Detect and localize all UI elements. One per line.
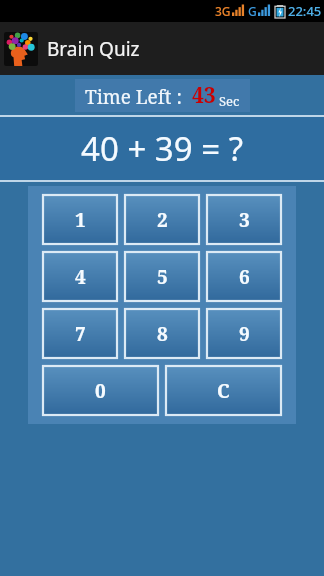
staticText: 6: [239, 264, 250, 290]
staticText: 5: [157, 264, 168, 290]
staticText: Time Left :: [85, 84, 192, 110]
button[interactable]: 0: [43, 366, 158, 415]
staticText: 1: [75, 207, 86, 233]
button[interactable]: 5: [125, 252, 199, 301]
staticText: 0: [95, 378, 106, 404]
staticText: 43: [192, 81, 216, 110]
button[interactable]: 7: [43, 309, 117, 358]
button[interactable]: C: [166, 366, 281, 415]
staticText: 3: [239, 207, 250, 233]
button[interactable]: 4: [43, 252, 117, 301]
button[interactable]: 1: [43, 195, 117, 244]
staticText: 3G: [215, 3, 231, 19]
button[interactable]: 6: [207, 252, 281, 301]
button[interactable]: 2: [125, 195, 199, 244]
staticText: 2: [157, 207, 168, 233]
staticText: G: [248, 3, 257, 19]
staticText: 4: [75, 264, 86, 290]
button[interactable]: 8: [125, 309, 199, 358]
staticText: 7: [75, 321, 86, 347]
staticText: 8: [157, 321, 168, 347]
staticText: Sec: [219, 92, 240, 110]
staticText: Brain Quiz: [47, 36, 140, 62]
staticText: 22:45: [288, 2, 322, 20]
staticText: 9: [239, 321, 250, 347]
staticText: 40 + 39 = ?: [81, 126, 243, 171]
button[interactable]: 9: [207, 309, 281, 358]
button[interactable]: 3: [207, 195, 281, 244]
staticText: C: [217, 378, 230, 404]
